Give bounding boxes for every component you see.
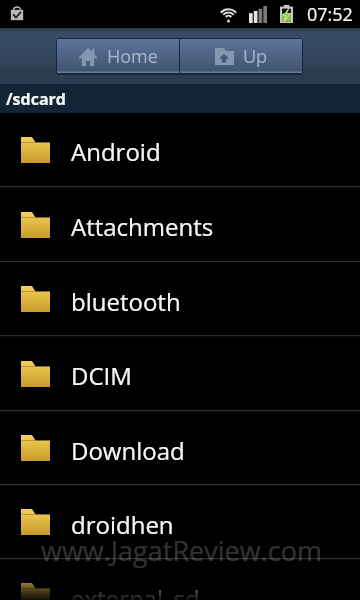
staticText: www.JagatReview.com xyxy=(41,532,322,569)
staticText: Attachments xyxy=(71,210,214,243)
staticText: 07:52 xyxy=(307,2,353,27)
staticText: droidhen xyxy=(71,508,174,541)
button[interactable]: Download xyxy=(0,412,360,484)
button[interactable]: bluetooth xyxy=(0,263,360,335)
staticText: DCIM xyxy=(71,359,132,392)
button[interactable]: Up xyxy=(180,39,302,73)
button[interactable]: external_sd xyxy=(0,560,360,600)
other: Notification xyxy=(6,3,28,25)
staticText: Download xyxy=(71,434,185,467)
staticText: bluetooth xyxy=(71,285,181,318)
staticText: Up xyxy=(243,44,268,69)
button[interactable]: Android xyxy=(0,113,360,186)
staticText: Home xyxy=(107,44,158,69)
button[interactable]: droidhen xyxy=(0,486,360,558)
button[interactable]: Attachments xyxy=(0,188,360,261)
button[interactable]: Home xyxy=(57,39,179,73)
button[interactable]: DCIM xyxy=(0,337,360,410)
staticText: Android xyxy=(71,135,161,168)
staticText: /sdcard xyxy=(6,88,66,110)
staticText: external_sd xyxy=(71,582,200,600)
